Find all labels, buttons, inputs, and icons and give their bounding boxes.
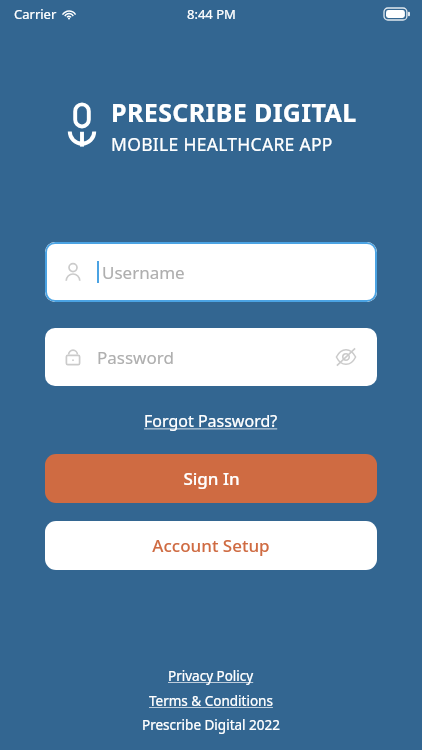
staticText: Account Setup [152,534,270,557]
staticText: Username [102,261,185,284]
button[interactable]: Terms & Conditions [143,691,279,711]
button[interactable]: Show password [333,344,359,370]
staticText: Sign In [183,467,240,490]
button[interactable]: Username [45,242,377,302]
staticText: Password [97,346,333,369]
button[interactable]: Sign In [45,454,377,503]
staticText: PRESCRIBE DIGITAL [111,95,357,129]
staticText: Carrier [14,5,57,23]
button[interactable]: Account Setup [45,521,377,570]
button[interactable]: Password [45,328,377,386]
button[interactable]: Forgot Password? [138,408,284,434]
button[interactable]: Privacy Policy [162,666,260,686]
staticText: 8:44 PM [187,5,236,23]
staticText: Prescribe Digital 2022 [142,716,280,734]
staticText: MOBILE HEALTHCARE APP [111,132,333,156]
